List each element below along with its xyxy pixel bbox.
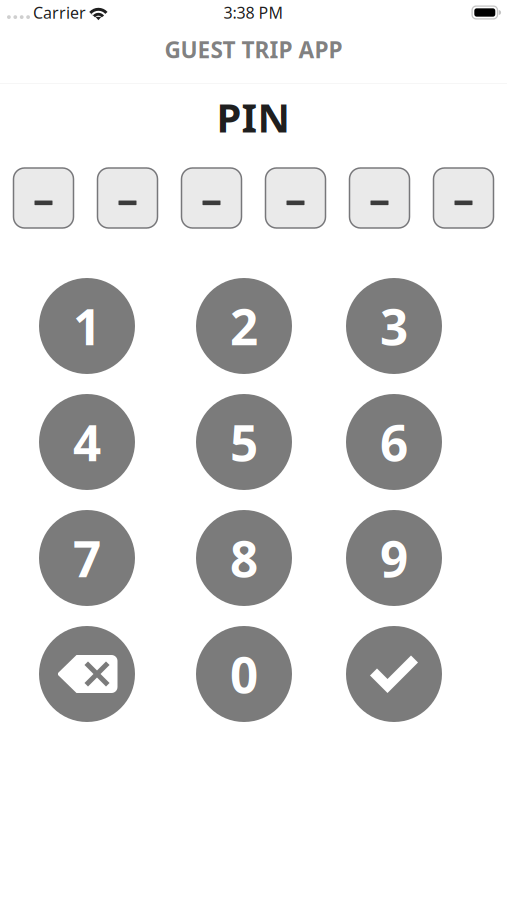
staticText: 0	[230, 641, 258, 707]
button[interactable]: 3	[346, 278, 442, 374]
button[interactable]: 8	[196, 510, 292, 606]
button[interactable]: 2	[196, 278, 292, 374]
button[interactable]: 6	[346, 394, 442, 490]
button[interactable]: Confirm	[346, 626, 442, 722]
staticText: 3	[380, 293, 408, 359]
staticText: Carrier	[33, 2, 86, 23]
button[interactable]: 4	[39, 394, 135, 490]
button[interactable]: 9	[346, 510, 442, 606]
button[interactable]: 0	[196, 626, 292, 722]
staticText: 2	[230, 293, 258, 359]
staticText: GUEST TRIP APP	[164, 34, 342, 64]
staticText: 1	[73, 293, 101, 359]
staticText: 3:38 PM	[223, 2, 283, 23]
staticText: 8	[230, 525, 258, 591]
staticText: PIN	[216, 90, 290, 143]
button[interactable]: 5	[196, 394, 292, 490]
staticText: 7	[73, 525, 101, 591]
staticText: 4	[73, 409, 101, 475]
button[interactable]: Delete	[39, 626, 135, 722]
staticText: 6	[380, 409, 408, 475]
button[interactable]: 1	[39, 278, 135, 374]
staticText: 5	[230, 409, 258, 475]
button[interactable]: 7	[39, 510, 135, 606]
staticText: 9	[380, 525, 408, 591]
